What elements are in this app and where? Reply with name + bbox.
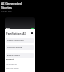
staticText: No stories yet [6, 63, 17, 65]
button[interactable]: Create a new story [6, 38, 34, 43]
staticText: Recent [6, 58, 14, 61]
staticText: Create a new story [7, 39, 24, 42]
button[interactable]: Profile [31, 32, 33, 34]
staticText: Fanfiction AI [6, 32, 26, 36]
staticText: Browse library [7, 54, 20, 57]
staticText: 9:41 [6, 27, 10, 29]
staticText: Stories [1, 5, 12, 9]
staticText: Start one above [6, 67, 19, 69]
button[interactable]: Continue writing [6, 45, 34, 50]
staticText: Continue writing [7, 46, 23, 49]
staticText: AI Generated [1, 1, 22, 5]
staticText: Fanfic app [1, 10, 12, 13]
button[interactable]: Browse library [6, 53, 34, 58]
staticText: Write your own stories [6, 37, 24, 39]
